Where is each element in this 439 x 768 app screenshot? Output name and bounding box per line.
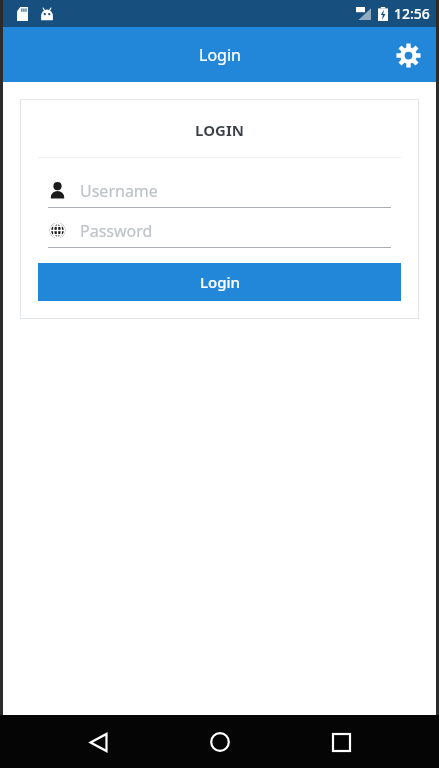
staticText: Password	[80, 220, 153, 242]
button[interactable]: Recents	[317, 718, 365, 766]
staticText: LOGIN	[20, 120, 419, 140]
button[interactable]: Settings	[386, 33, 430, 77]
staticText: 12:56	[394, 4, 430, 23]
button[interactable]: Login	[38, 263, 401, 301]
staticText: Username	[80, 180, 158, 202]
button[interactable]: Password	[48, 217, 391, 248]
staticText: Login	[200, 272, 240, 292]
button[interactable]: Username	[48, 177, 391, 208]
button[interactable]: Home	[196, 718, 244, 766]
staticText: Login	[199, 44, 241, 66]
button[interactable]: Back	[74, 718, 122, 766]
